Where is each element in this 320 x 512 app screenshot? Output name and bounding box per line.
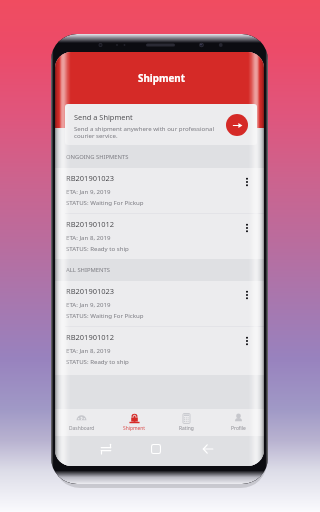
staticText: RB201901023 (66, 286, 115, 296)
button[interactable]: Home (147, 440, 165, 458)
staticText: Send a shipment anywhere with our profes… (74, 124, 220, 140)
button[interactable]: RB201901012 (55, 214, 264, 259)
staticText: Profile (231, 425, 246, 432)
staticText: STATUS: Waiting For Pickup (66, 311, 144, 319)
staticText: RB201901012 (66, 332, 115, 342)
staticText: ETA: Jan 8, 2019 (66, 346, 111, 354)
staticText: Shipment (123, 425, 146, 432)
staticText: STATUS: Ready to ship (66, 244, 129, 252)
button[interactable]: Dashboard (55, 409, 108, 436)
staticText: STATUS: Waiting For Pickup (66, 198, 144, 206)
button[interactable]: Send a Shipment (65, 104, 257, 145)
staticText: RB201901012 (66, 219, 115, 229)
staticText: RB201901023 (66, 173, 115, 183)
button[interactable]: RB201901012 (55, 327, 264, 375)
staticText: Send a Shipment (74, 112, 133, 122)
button[interactable]: Rating (160, 409, 212, 436)
staticText: ETA: Jan 9, 2019 (66, 300, 111, 308)
button[interactable]: RB201901023 (55, 281, 264, 327)
button[interactable]: Shipment (108, 409, 160, 436)
staticText: Dashboard (69, 425, 95, 432)
button[interactable]: More options (238, 332, 256, 350)
staticText: Shipment (57, 72, 264, 85)
staticText: Rating (179, 425, 194, 432)
button[interactable]: RB201901023 (55, 168, 264, 214)
staticText: ETA: Jan 9, 2019 (66, 187, 111, 195)
button[interactable]: Back (199, 440, 217, 458)
button[interactable]: More options (238, 286, 256, 304)
button[interactable]: Send a shipment (226, 114, 248, 136)
staticText: ONGOING SHIPMENTS (66, 153, 129, 161)
staticText: STATUS: Ready to ship (66, 357, 129, 365)
button[interactable]: More options (238, 219, 256, 237)
button[interactable]: More options (238, 173, 256, 191)
button[interactable]: Recent apps (97, 440, 115, 458)
staticText: ETA: Jan 8, 2019 (66, 233, 111, 241)
button[interactable]: Profile (212, 409, 264, 436)
staticText: ALL SHIPMENTS (66, 266, 110, 274)
